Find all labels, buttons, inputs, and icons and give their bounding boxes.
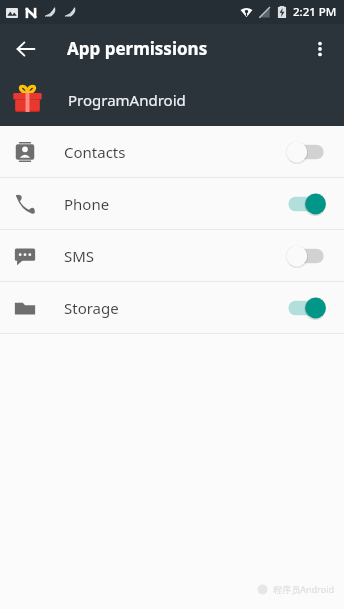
staticText: Phone <box>64 194 110 214</box>
button[interactable]: Back <box>6 29 46 69</box>
staticText: SMS <box>64 246 95 266</box>
button[interactable]: Toggle on <box>286 191 326 217</box>
staticText: 2:21 PM <box>293 4 337 20</box>
staticText: Contacts <box>64 142 126 162</box>
button[interactable]: Toggle off <box>286 139 326 165</box>
staticText: 程序员Android <box>273 583 334 595</box>
button[interactable]: Toggle on <box>286 295 326 321</box>
staticText: App permissions <box>67 37 208 60</box>
button[interactable]: Toggle off <box>286 243 326 269</box>
button[interactable]: Contacts <box>0 126 344 177</box>
button[interactable]: More options <box>300 29 340 69</box>
button[interactable]: Storage <box>0 282 344 333</box>
button[interactable]: ProgramAndroid <box>0 73 344 126</box>
staticText: ProgramAndroid <box>68 90 186 110</box>
button[interactable]: Phone <box>0 178 344 229</box>
button[interactable]: SMS <box>0 230 344 281</box>
staticText: Storage <box>64 298 119 318</box>
